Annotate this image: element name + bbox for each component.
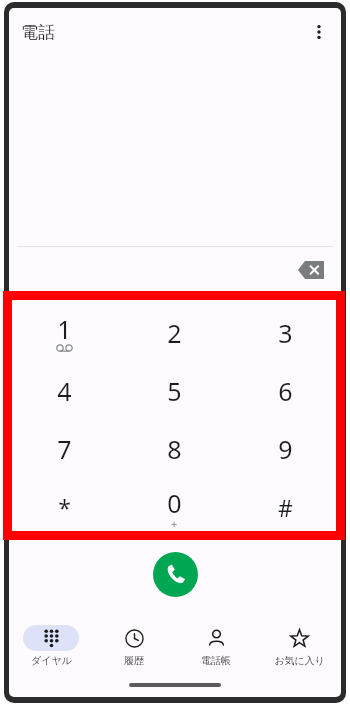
staticText: 電話帳 <box>201 654 231 667</box>
button[interactable]: 5 <box>119 362 230 420</box>
button[interactable]: 3 <box>230 303 341 362</box>
button[interactable]: Backspace <box>289 250 333 290</box>
staticText: ダイヤル <box>31 654 72 667</box>
staticText: 7 <box>57 432 72 466</box>
staticText: 履歴 <box>124 654 144 667</box>
staticText: * <box>58 492 71 523</box>
staticText: + <box>171 516 178 531</box>
staticText: 9 <box>278 432 293 466</box>
staticText: 4 <box>57 374 72 408</box>
button[interactable]: Call <box>153 552 198 597</box>
button[interactable]: 8 <box>119 420 230 478</box>
button[interactable]: 履歴 <box>94 621 174 679</box>
staticText: # <box>278 492 293 523</box>
button[interactable]: * <box>9 478 119 536</box>
button[interactable]: お気に入り <box>259 621 339 679</box>
button[interactable]: 1 <box>9 303 119 362</box>
button[interactable]: 6 <box>230 362 341 420</box>
button[interactable]: 2 <box>119 303 230 362</box>
button[interactable]: ダイヤル <box>11 621 91 679</box>
staticText: 1 <box>57 312 72 346</box>
button[interactable]: 4 <box>9 362 119 420</box>
button[interactable]: 0 <box>119 478 230 536</box>
button[interactable]: 9 <box>230 420 341 478</box>
staticText: 2 <box>167 316 182 350</box>
staticText: お気に入り <box>274 654 325 667</box>
button[interactable]: 7 <box>9 420 119 478</box>
staticText: 3 <box>278 316 293 350</box>
staticText: 電話 <box>21 22 55 43</box>
staticText: 8 <box>167 432 182 466</box>
button[interactable]: More options <box>301 14 337 50</box>
staticText: 0 <box>167 486 182 520</box>
staticText: 5 <box>167 374 182 408</box>
button[interactable]: # <box>230 478 341 536</box>
button[interactable]: 電話帳 <box>176 621 256 679</box>
staticText: 6 <box>278 374 293 408</box>
